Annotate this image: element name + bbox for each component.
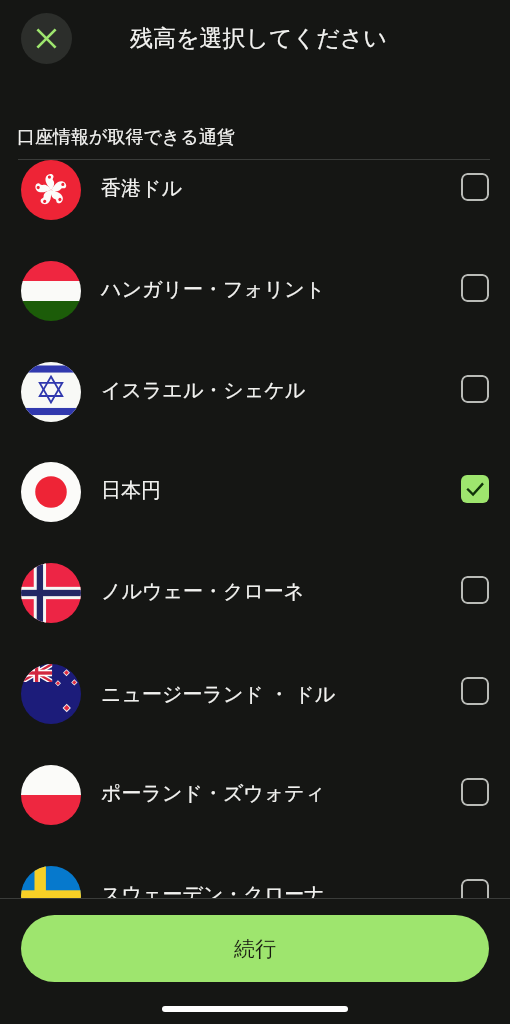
- button[interactable]: Not selected: [461, 274, 489, 302]
- button[interactable]: 香港ドル: [0, 160, 510, 261]
- button[interactable]: スウェーデン・クローナ: [0, 866, 510, 967]
- button[interactable]: ポーランド・ズウォティ: [0, 765, 510, 866]
- staticText: ハンガリー・フォリント: [101, 277, 462, 302]
- button[interactable]: ニュージーランド ・ ドル: [0, 664, 510, 765]
- button[interactable]: Not selected: [461, 778, 489, 806]
- staticText: ニュージーランド ・ ドル: [101, 680, 462, 707]
- staticText: ポーランド・ズウォティ: [101, 781, 462, 806]
- button[interactable]: 日本円: [0, 462, 510, 563]
- button[interactable]: Selected: [461, 475, 489, 503]
- staticText: 日本円: [101, 478, 462, 503]
- button[interactable]: ハンガリー・フォリント: [0, 261, 510, 362]
- button[interactable]: イスラエル・シェケル: [0, 362, 510, 463]
- button[interactable]: Not selected: [461, 879, 489, 907]
- button[interactable]: Not selected: [461, 677, 489, 705]
- button[interactable]: Not selected: [461, 576, 489, 604]
- staticText: 続行: [234, 936, 276, 962]
- button[interactable]: Not selected: [461, 173, 489, 201]
- staticText: 香港ドル: [101, 176, 462, 201]
- staticText: スウェーデン・クローナ: [101, 882, 462, 907]
- button[interactable]: Not selected: [461, 375, 489, 403]
- staticText: イスラエル・シェケル: [101, 378, 462, 403]
- staticText: 口座情報が取得できる通貨: [17, 126, 235, 149]
- button[interactable]: Close: [21, 13, 72, 64]
- staticText: ノルウェー・クローネ: [101, 579, 462, 604]
- staticText: 残高を選択してください: [130, 24, 387, 53]
- button[interactable]: ノルウェー・クローネ: [0, 563, 510, 664]
- button[interactable]: 続行: [21, 915, 489, 982]
